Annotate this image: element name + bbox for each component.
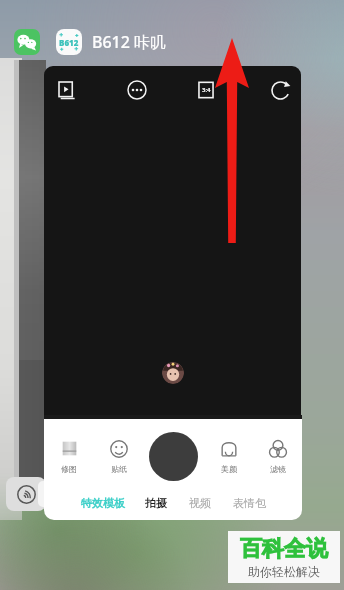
button[interactable]: B612 app icon bbox=[56, 29, 82, 55]
button[interactable]: 特效模板 bbox=[79, 496, 127, 510]
staticText: 视频 bbox=[189, 496, 211, 510]
staticText: 拍摄 bbox=[145, 496, 167, 510]
button[interactable]: 美颜 bbox=[204, 431, 253, 481]
button[interactable]: Shutter bbox=[149, 432, 198, 481]
staticText: 助你轻松解决 bbox=[248, 564, 320, 579]
staticText: B612 bbox=[59, 37, 79, 48]
button[interactable]: Aspect ratio 3:4 bbox=[194, 78, 218, 102]
button[interactable]: Gallery bbox=[55, 78, 79, 102]
staticText: 百科全说 bbox=[240, 535, 328, 563]
button[interactable]: 滤镜 bbox=[253, 431, 302, 481]
button[interactable]: 拍摄 bbox=[143, 496, 169, 510]
staticText: 3:4 bbox=[202, 86, 211, 94]
staticText: 表情包 bbox=[233, 496, 266, 510]
button[interactable]: Effect thumbnail bbox=[162, 362, 184, 384]
staticText: B612 咔叽 bbox=[92, 31, 167, 53]
button[interactable]: More options bbox=[125, 78, 149, 102]
staticText: 滤镜 bbox=[270, 464, 286, 474]
staticText: 特效模板 bbox=[81, 496, 125, 510]
staticText: 美颜 bbox=[221, 464, 237, 474]
button[interactable]: 表情包 bbox=[231, 496, 268, 510]
button[interactable]: 修图 bbox=[44, 431, 94, 481]
staticText: 贴纸 bbox=[111, 464, 127, 474]
button[interactable]: 视频 bbox=[187, 496, 213, 510]
button[interactable]: Audio bbox=[6, 477, 46, 511]
button[interactable]: 贴纸 bbox=[94, 431, 143, 481]
staticText: 修图 bbox=[61, 464, 77, 474]
button[interactable]: WeChat bbox=[14, 29, 40, 55]
button[interactable]: Switch camera bbox=[268, 78, 292, 102]
